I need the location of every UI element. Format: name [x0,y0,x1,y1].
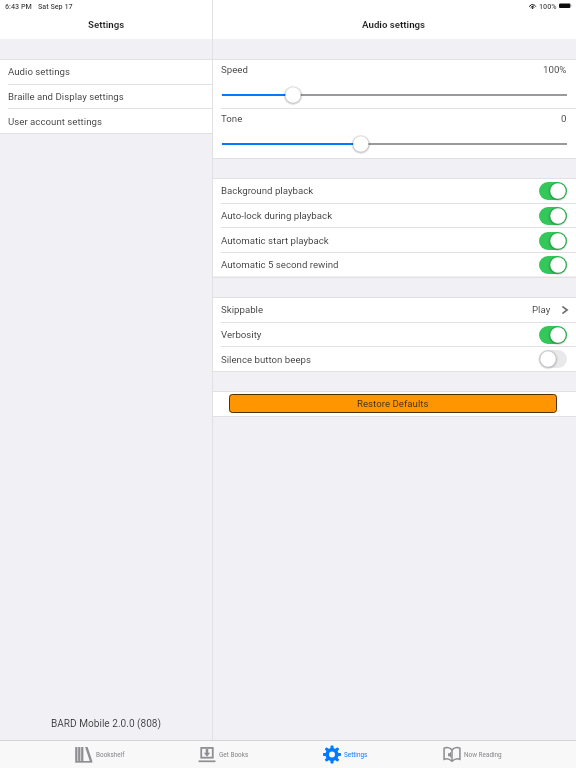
staticText: 100% [543,64,567,75]
button[interactable]: User account settings [0,109,212,133]
staticText: Automatic start playback [221,235,329,246]
button[interactable]: Background playback [213,178,576,203]
staticText: Tone [221,113,243,124]
button[interactable]: Settings [283,741,407,768]
button[interactable]: Skippable [213,297,576,322]
staticText: Bookshelf [96,751,125,759]
button[interactable]: Audio settings [0,59,212,84]
button[interactable]: Get Books [161,741,285,768]
button[interactable]: Auto-lock during playback [213,203,576,228]
button[interactable]: Verbosity [213,322,576,347]
staticText: Silence button beeps [221,354,312,365]
staticText: Play [532,304,551,315]
button[interactable]: Braille and Display settings [0,84,212,109]
staticText: Auto-lock during playback [221,210,333,221]
staticText: Now Reading [464,751,502,759]
staticText: Settings [344,751,368,759]
button[interactable]: Restore Defaults [229,394,557,413]
staticText: Speed [221,64,248,75]
button[interactable]: Automatic 5 second rewind [213,253,576,276]
staticText: Settings [88,19,125,30]
staticText: Verbosity [221,329,262,340]
button[interactable]: Automatic start playback [213,228,576,253]
staticText: Braille and Display settings [8,91,124,102]
staticText: Background playback [221,185,314,196]
staticText: Skippable [221,304,264,315]
staticText: BARD Mobile 2.0.0 (808) [51,718,162,730]
button[interactable]: Bookshelf [38,741,162,768]
staticText: 100% [539,2,557,10]
staticText: Audio settings [8,66,70,77]
button[interactable]: Silence button beeps [213,347,576,371]
staticText: Automatic 5 second rewind [221,259,339,270]
button[interactable]: Now Reading [406,741,538,768]
staticText: Restore Defaults [357,398,429,409]
staticText: 0 [561,113,567,124]
staticText: User account settings [8,116,102,127]
staticText: Audio settings [362,19,426,30]
staticText: Sat Sep 17 [38,2,73,10]
staticText: Get Books [219,751,249,759]
staticText: 6:43 PM [5,2,32,10]
